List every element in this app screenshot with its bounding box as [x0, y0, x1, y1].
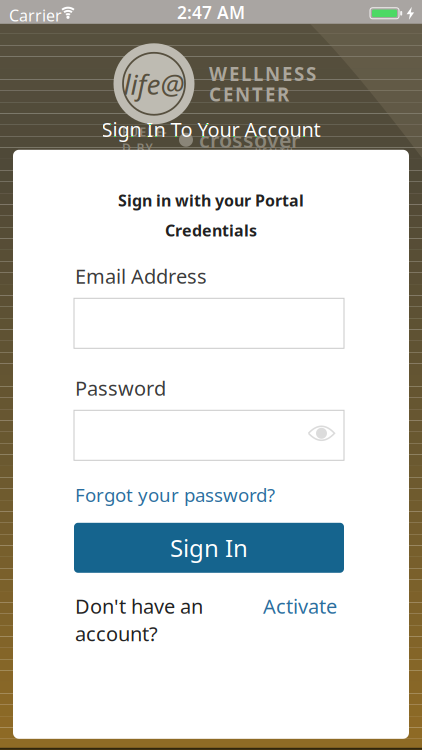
button[interactable]: Password: [74, 410, 344, 460]
staticText: HEALTH: [255, 146, 292, 156]
staticText: crossover: [199, 126, 300, 154]
button[interactable]: Email Address: [74, 298, 344, 348]
staticText: CENTER: [209, 82, 289, 107]
button[interactable]: Show password: [304, 418, 338, 448]
staticText: Activate: [263, 593, 337, 619]
staticText: life@: [123, 65, 184, 102]
staticText: Credentials: [165, 220, 257, 241]
button[interactable]: Forgot your password?: [75, 482, 275, 507]
staticText: FUELED BY: [122, 124, 173, 156]
staticText: 2:47 AM: [177, 1, 245, 24]
button[interactable]: Sign In: [74, 523, 344, 573]
staticText: Sign In: [170, 532, 248, 564]
staticText: Don't have an: [75, 593, 203, 619]
staticText: Email Address: [75, 263, 207, 289]
staticText: Carrier: [9, 5, 62, 26]
button[interactable]: Activate: [263, 593, 337, 619]
staticText: Password: [75, 375, 166, 401]
staticText: WELLNESS: [209, 61, 316, 86]
staticText: Forgot your password?: [75, 482, 275, 507]
staticText: Sign in with your Portal: [118, 190, 304, 211]
staticText: account?: [75, 620, 158, 647]
staticText: Sign In To Your Account: [101, 116, 320, 143]
